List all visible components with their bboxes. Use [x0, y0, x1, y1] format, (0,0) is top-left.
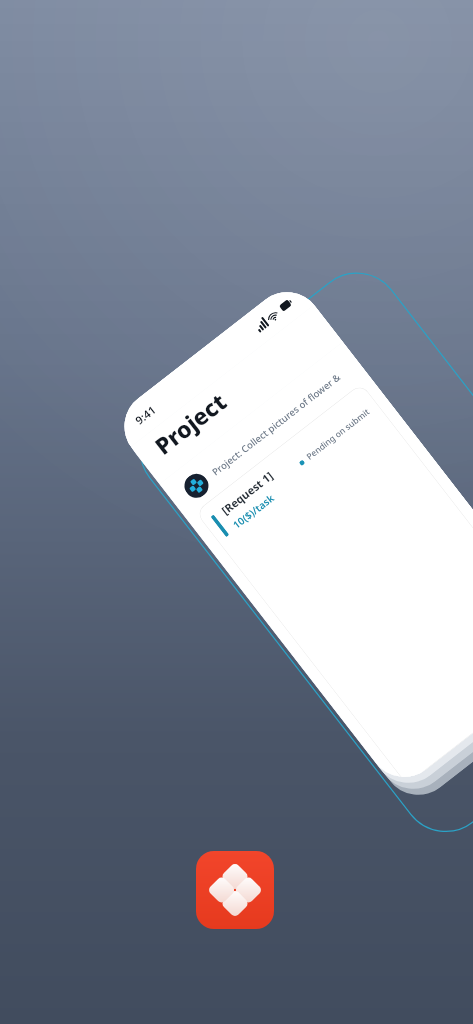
staticText: Project [148, 385, 232, 461]
other: Signal, Wi-Fi and battery [253, 296, 295, 333]
staticText: Pending on submit [304, 406, 372, 463]
button[interactable]: Open app [196, 851, 274, 929]
staticText: Project: Collect pictures of flower & tr… [209, 365, 351, 478]
staticText: 10($)/task [230, 491, 277, 532]
button[interactable]: [Request 1] Collect pictures of flower [195, 383, 473, 785]
staticText: 9:41 [132, 402, 158, 427]
staticText: [Request 1] Collect pictures of flower [218, 454, 294, 517]
button[interactable]: Project [160, 342, 370, 519]
button[interactable]: Project [180, 469, 213, 503]
